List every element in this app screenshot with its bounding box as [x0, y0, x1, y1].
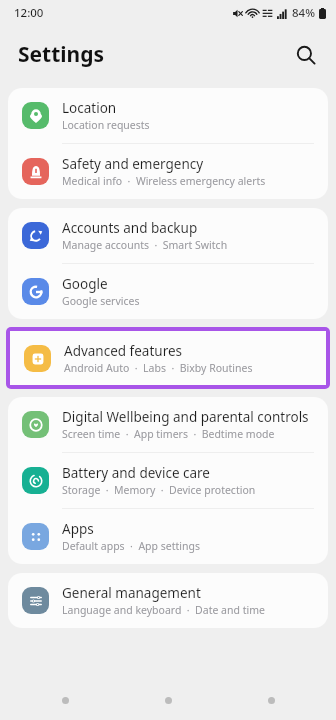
staticText: Android Auto · Labs · Bixby Routines — [64, 361, 253, 375]
staticText: Location requests — [62, 118, 150, 132]
staticText: Storage · Memory · Device protection — [62, 483, 256, 497]
staticText: Manage accounts · Smart Switch — [62, 238, 228, 252]
staticText: Safety and emergency — [62, 155, 204, 173]
button[interactable]: Advanced features — [10, 331, 326, 385]
button[interactable]: Apps — [8, 509, 328, 564]
staticText: 84% — [292, 5, 315, 21]
staticText: Google services — [62, 294, 140, 308]
staticText: Language and keyboard · Date and time — [62, 603, 265, 617]
staticText: 12:00 — [14, 5, 44, 21]
staticText: Location — [62, 99, 117, 117]
staticText: Apps — [62, 520, 94, 538]
staticText: General management — [62, 584, 201, 602]
button[interactable]: Back — [233, 683, 309, 717]
staticText: Default apps · App settings — [62, 539, 200, 553]
staticText: Accounts and backup — [62, 219, 198, 237]
button[interactable]: Digital Wellbeing and parental controls — [8, 397, 328, 452]
button[interactable]: Search — [286, 35, 326, 75]
staticText: Medical info · Wireless emergency alerts — [62, 174, 266, 188]
staticText: Google — [62, 275, 108, 293]
staticText: Screen time · App timers · Bedtime mode — [62, 427, 275, 441]
staticText: Digital Wellbeing and parental controls — [62, 408, 309, 426]
staticText: Battery and device care — [62, 464, 210, 482]
button[interactable]: Location — [8, 88, 328, 143]
button[interactable]: Recents — [27, 683, 103, 717]
button[interactable]: Battery and device care — [8, 453, 328, 508]
button[interactable]: General management — [8, 573, 328, 628]
button[interactable]: Google — [8, 264, 328, 319]
staticText: Settings — [18, 40, 105, 69]
staticText: Advanced features — [64, 342, 183, 360]
button[interactable]: Accounts and backup — [8, 208, 328, 263]
button[interactable]: Home — [130, 683, 206, 717]
button[interactable]: Safety and emergency — [8, 144, 328, 199]
